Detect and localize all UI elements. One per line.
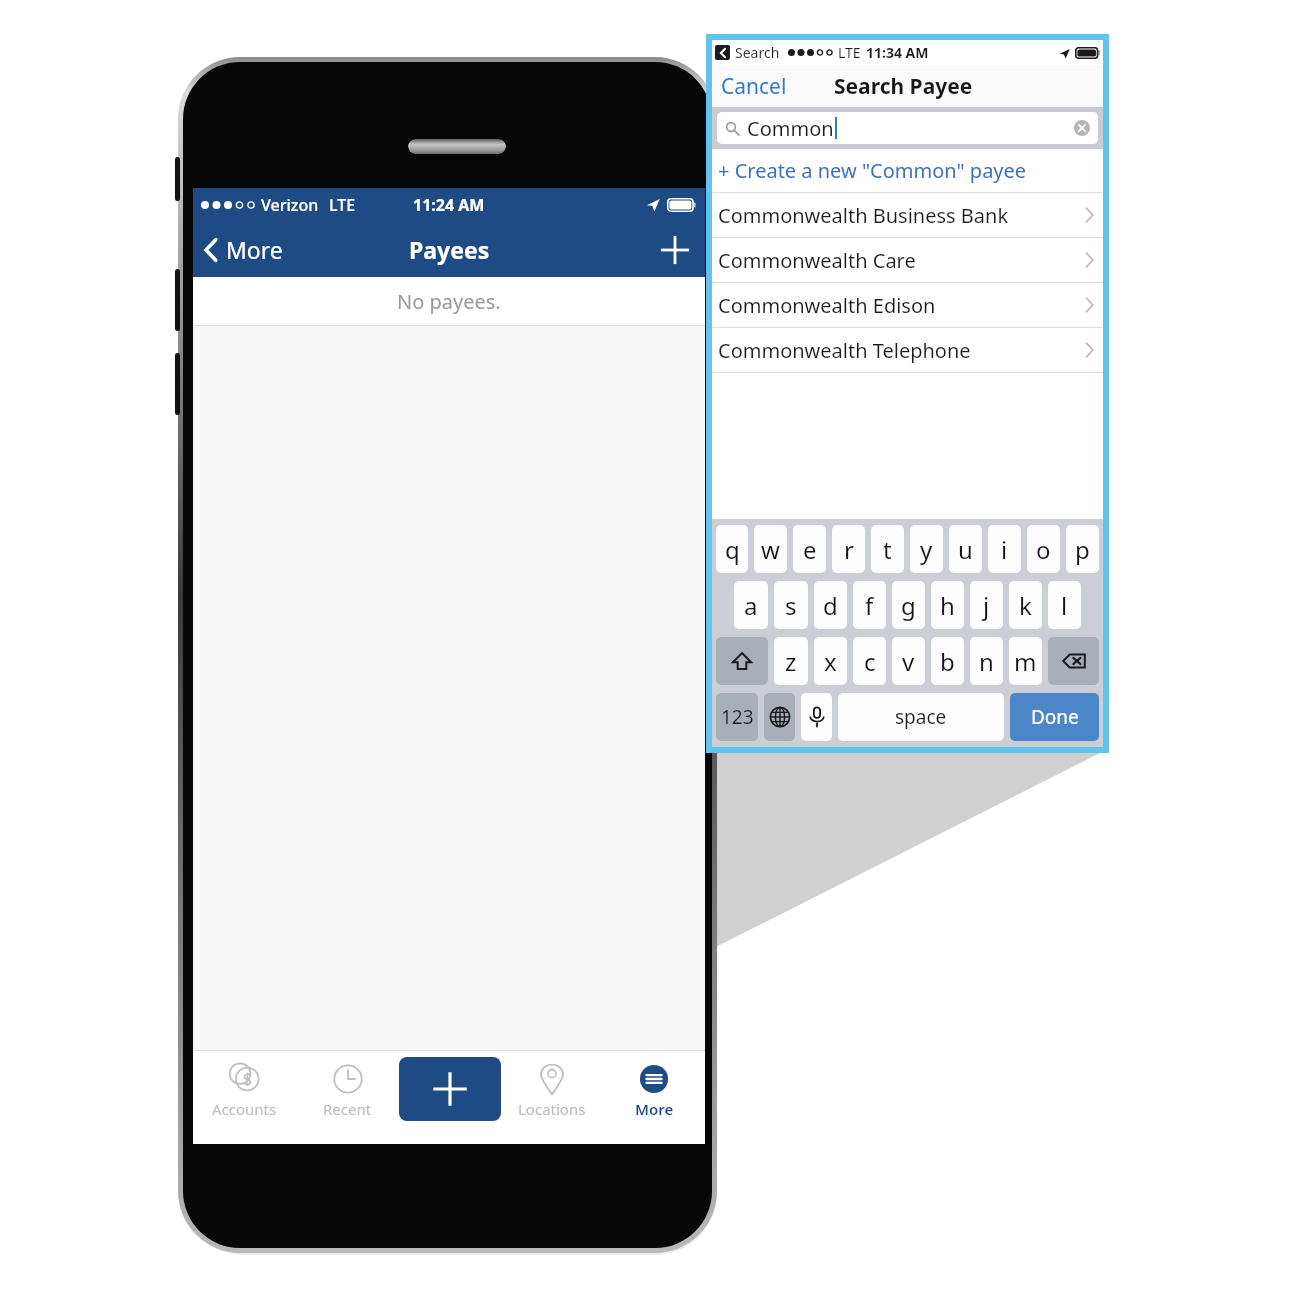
staticText: b <box>940 645 955 678</box>
button[interactable]: i <box>988 525 1021 573</box>
staticText: 123 <box>721 704 754 730</box>
button[interactable]: x <box>814 637 847 685</box>
staticText: i <box>1001 533 1008 566</box>
staticText: Search Payee <box>834 72 973 101</box>
button[interactable]: Backspace <box>1048 637 1099 685</box>
staticText: x <box>824 645 837 678</box>
button[interactable]: y <box>910 525 943 573</box>
staticText: LTE <box>838 43 861 62</box>
button[interactable]: Add <box>399 1057 501 1121</box>
button[interactable]: u <box>949 525 982 573</box>
button[interactable]: More <box>193 226 294 273</box>
button[interactable]: + Create a new "Common" payee <box>712 149 1103 192</box>
button[interactable]: Done <box>1010 693 1099 741</box>
button[interactable]: Commonwealth Telephone <box>712 328 1103 372</box>
button[interactable]: q <box>716 525 748 573</box>
staticText: y <box>920 533 933 566</box>
staticText: m <box>1014 645 1037 678</box>
staticText: n <box>979 645 994 678</box>
button[interactable]: Add payee <box>645 222 705 277</box>
button[interactable]: h <box>931 581 964 629</box>
button[interactable]: Commonwealth Business Bank <box>712 193 1103 237</box>
button[interactable]: p <box>1066 525 1099 573</box>
staticText: LTE <box>329 194 356 216</box>
staticText: Common <box>747 115 834 142</box>
staticText: Cancel <box>721 72 787 100</box>
staticText: a <box>744 589 758 622</box>
button[interactable]: t <box>871 525 904 573</box>
staticText: q <box>725 533 740 566</box>
staticText: w <box>761 533 780 566</box>
button[interactable]: d <box>814 581 847 629</box>
button[interactable]: c <box>853 637 886 685</box>
button[interactable]: Clear text <box>1074 120 1090 136</box>
button[interactable]: Common <box>717 112 1098 144</box>
button[interactable]: s <box>774 581 808 629</box>
button[interactable]: Commonwealth Care <box>712 238 1103 282</box>
staticText: g <box>901 589 916 622</box>
staticText: space <box>895 704 947 730</box>
staticText: d <box>823 589 838 622</box>
staticText: t <box>883 533 892 566</box>
button[interactable]: o <box>1027 525 1060 573</box>
staticText: z <box>785 645 797 678</box>
button[interactable]: Dictation <box>801 693 832 741</box>
button[interactable]: Cancel <box>712 65 796 107</box>
staticText: h <box>940 589 955 622</box>
button[interactable]: m <box>1009 637 1042 685</box>
button[interactable]: Change keyboard <box>764 693 795 741</box>
button[interactable]: l <box>1048 581 1081 629</box>
button[interactable]: f <box>853 581 886 629</box>
button[interactable]: Commonwealth Edison <box>712 283 1103 327</box>
staticText: Commonwealth Edison <box>718 292 936 319</box>
button[interactable]: a <box>734 581 768 629</box>
staticText: s <box>785 589 797 622</box>
staticText: r <box>844 533 854 566</box>
button[interactable]: w <box>754 525 787 573</box>
staticText: k <box>1019 589 1032 622</box>
staticText: Verizon <box>261 194 319 216</box>
staticText: Commonwealth Telephone <box>718 337 971 364</box>
button[interactable]: More <box>603 1051 705 1144</box>
staticText: o <box>1036 533 1051 566</box>
button[interactable]: e <box>793 525 826 573</box>
button[interactable]: r <box>832 525 865 573</box>
staticText: Commonwealth Business Bank <box>718 202 1009 229</box>
staticText: e <box>803 533 817 566</box>
staticText: 11:34 AM <box>866 43 929 62</box>
staticText: f <box>865 589 874 622</box>
button[interactable]: Shift <box>716 637 768 685</box>
staticText: l <box>1061 589 1068 622</box>
staticText: Search <box>735 43 780 62</box>
staticText: Locations <box>518 1099 586 1119</box>
staticText: c <box>864 645 876 678</box>
staticText: More <box>226 234 283 265</box>
button[interactable]: k <box>1009 581 1042 629</box>
staticText: Recent <box>323 1099 372 1119</box>
staticText: Accounts <box>212 1099 277 1119</box>
staticText: More <box>635 1099 674 1119</box>
button[interactable]: j <box>970 581 1003 629</box>
staticText: 11:24 AM <box>413 194 485 216</box>
staticText: Payees <box>409 234 490 265</box>
staticText: u <box>958 533 973 566</box>
button[interactable]: n <box>970 637 1003 685</box>
button[interactable]: 123 <box>716 693 758 741</box>
button[interactable]: b <box>931 637 964 685</box>
staticText: No payees. <box>397 288 501 315</box>
staticText: j <box>983 589 990 622</box>
button[interactable]: Accounts <box>193 1051 296 1144</box>
staticText: Done <box>1031 704 1079 730</box>
button[interactable]: Recent <box>296 1051 399 1144</box>
button[interactable]: v <box>892 637 925 685</box>
staticText: v <box>902 645 915 678</box>
button[interactable]: z <box>774 637 808 685</box>
button[interactable]: Locations <box>501 1051 603 1144</box>
button[interactable]: g <box>892 581 925 629</box>
staticText: p <box>1075 533 1090 566</box>
staticText: Commonwealth Care <box>718 247 916 274</box>
staticText: + Create a new "Common" payee <box>718 157 1027 184</box>
button[interactable]: space <box>838 693 1004 741</box>
